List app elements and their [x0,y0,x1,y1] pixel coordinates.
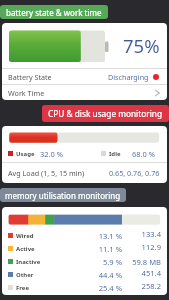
staticText: 451.4 MB [128,268,161,281]
staticText: 258.2 MB [128,281,161,294]
staticText: Idle [109,150,121,158]
button[interactable]: battery state & work time [0,5,108,19]
staticText: Free [16,284,30,292]
button[interactable]: memory utilisation monitoring [0,188,126,202]
staticText: Work Time [8,88,45,98]
button[interactable]: CPU & disk usage monitoring [42,105,169,122]
staticText: 32.0 % [40,149,64,159]
staticText: Other [16,271,34,279]
staticText: 133.4 MB [128,229,161,242]
staticText: Inactive [16,258,41,266]
other: Work Time details [155,89,160,97]
button[interactable]: Inactive [2,255,167,268]
button[interactable]: Wired [2,229,167,242]
staticText: 68.0 % [132,149,156,159]
staticText: Usage [16,150,35,158]
button[interactable]: Battery State [2,69,167,84]
staticText: Discharging [108,72,149,82]
button[interactable]: Other [2,268,167,281]
button[interactable]: Work Time [2,85,167,100]
staticText: 25.4 % [96,283,122,293]
button[interactable]: Active [2,242,167,255]
staticText: 0.65, 0.76, 0.76 [109,168,160,178]
staticText: Active [16,245,35,253]
staticText: 75% [123,33,160,58]
staticText: Wired [16,232,34,240]
button[interactable]: Avg Load (1, 5, 15 min) [2,163,167,183]
staticText: 112.9 MB [128,242,161,255]
staticText: 13.1 % [96,231,122,241]
staticText: 44.4 % [96,270,122,280]
staticText: 59.8 MB [128,257,161,267]
staticText: 5.9 % [96,257,122,267]
staticText: CPU & disk usage monitoring [48,108,163,119]
button[interactable]: Free [2,281,167,294]
staticText: memory utilisation monitoring [5,190,121,201]
staticText: Avg Load (1, 5, 15 min) [8,168,85,178]
staticText: Battery State [8,72,52,82]
staticText: 11.1 % [96,244,122,254]
staticText: battery state & work time [6,7,102,18]
